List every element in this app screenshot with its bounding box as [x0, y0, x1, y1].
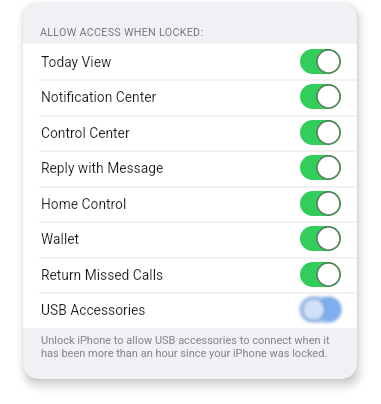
staticText: Reply with Message	[41, 160, 164, 176]
button[interactable]: Toggle on	[300, 226, 341, 251]
staticText: Today View	[41, 54, 112, 70]
button[interactable]: Home Control	[23, 186, 357, 221]
button[interactable]: Toggle on	[300, 84, 341, 109]
staticText: Unlock iPhone to allow USB accessories t…	[41, 334, 342, 360]
staticText: USB Accessories	[41, 302, 146, 318]
button[interactable]: Toggle on	[300, 155, 341, 180]
staticText: Control Center	[41, 125, 130, 141]
button[interactable]: Toggle on	[300, 262, 341, 287]
staticText: Wallet	[41, 231, 80, 247]
button[interactable]: Control Center	[23, 115, 357, 150]
button[interactable]: Notification Center	[23, 79, 357, 114]
button[interactable]: Toggle on	[300, 49, 341, 74]
staticText: Notification Center	[41, 89, 157, 105]
button[interactable]: USB Accessories	[23, 292, 357, 327]
staticText: ALLOW ACCESS WHEN LOCKED:	[40, 26, 204, 39]
button[interactable]: Toggle on	[300, 120, 341, 145]
button[interactable]: Wallet	[23, 221, 357, 256]
staticText: Home Control	[41, 196, 127, 212]
button[interactable]: Toggle on	[300, 191, 341, 216]
button[interactable]: Today View	[23, 44, 357, 79]
button[interactable]: Toggle off	[294, 292, 347, 327]
button[interactable]: Return Missed Calls	[23, 257, 357, 292]
button[interactable]: Reply with Message	[23, 150, 357, 185]
staticText: Return Missed Calls	[41, 267, 164, 283]
